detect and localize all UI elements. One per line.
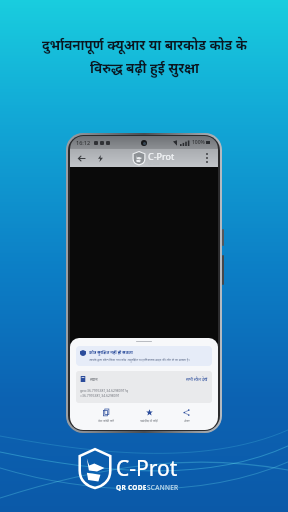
staticText: C-Prot: [116, 454, 178, 483]
staticText: 100%: [192, 139, 205, 146]
staticText: स्थान: [90, 377, 98, 382]
staticText: आपके द्वारा स्कैन किया गया कोड असुरक्षित…: [89, 358, 190, 362]
button[interactable]: शेयर: [180, 408, 193, 424]
button[interactable]: Flash: [94, 152, 106, 164]
staticText: शेयर: [184, 419, 190, 423]
staticText: डेटा कॉपी करें: [98, 419, 114, 423]
staticText: दुर्भावनापूर्ण क्यूआर या बारकोड कोड के: [42, 36, 247, 54]
staticText: पसंदीदा में जोड़ें: [140, 419, 158, 423]
staticText: geo:36.7976381,34.6298091?q: [80, 388, 129, 393]
button[interactable]: Back: [75, 152, 87, 164]
staticText: SCANNER: [147, 483, 179, 492]
staticText: 16:12: [76, 139, 91, 146]
staticText: =36.7976381,34.6298091: [80, 393, 120, 398]
staticText: QR CODE: [116, 483, 147, 492]
staticText: C-Prot: [148, 150, 175, 162]
button[interactable]: सभी स्कैन देखें: [186, 377, 208, 382]
staticText: विरुद्ध बढ़ी हुई सुरक्षा: [90, 59, 199, 77]
button[interactable]: डेटा कॉपी करें: [95, 408, 117, 424]
staticText: कोड सुरक्षित नहीं हो सकता: [89, 350, 133, 356]
button[interactable]: More options: [201, 152, 213, 164]
button[interactable]: पसंदीदा में जोड़ें: [137, 408, 161, 424]
staticText: सभी स्कैन देखें: [186, 377, 208, 382]
